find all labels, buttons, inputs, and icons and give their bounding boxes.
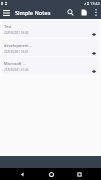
button[interactable]: Toggle note visibility	[90, 49, 98, 56]
staticText: 22/03/2021 16:01	[4, 50, 29, 54]
staticText: Microsoft …	[4, 61, 26, 66]
button[interactable]: Toggle note visibility	[90, 30, 98, 37]
staticText: development…	[4, 43, 32, 48]
button[interactable]: Test	[2, 20, 99, 37]
button[interactable]: Toggle note visibility	[90, 67, 98, 74]
staticText: Test	[4, 24, 12, 29]
button[interactable]: Search	[64, 6, 77, 19]
staticText: 17:42	[90, 1, 100, 6]
staticText: 21/03/2021 21:45	[4, 68, 29, 72]
staticText: 22/03/2021 16:02	[4, 31, 29, 35]
button[interactable]: Recent apps	[73, 168, 85, 180]
button[interactable]: Home	[45, 168, 57, 180]
button[interactable]: New note	[77, 6, 90, 19]
button[interactable]: Open navigation drawer	[0, 6, 13, 19]
button[interactable]: Microsoft …	[2, 57, 99, 74]
staticText: Simple Notes	[15, 9, 51, 17]
button[interactable]: development…	[2, 39, 99, 56]
button[interactable]: More options	[90, 7, 101, 18]
button[interactable]: Back	[16, 168, 28, 180]
